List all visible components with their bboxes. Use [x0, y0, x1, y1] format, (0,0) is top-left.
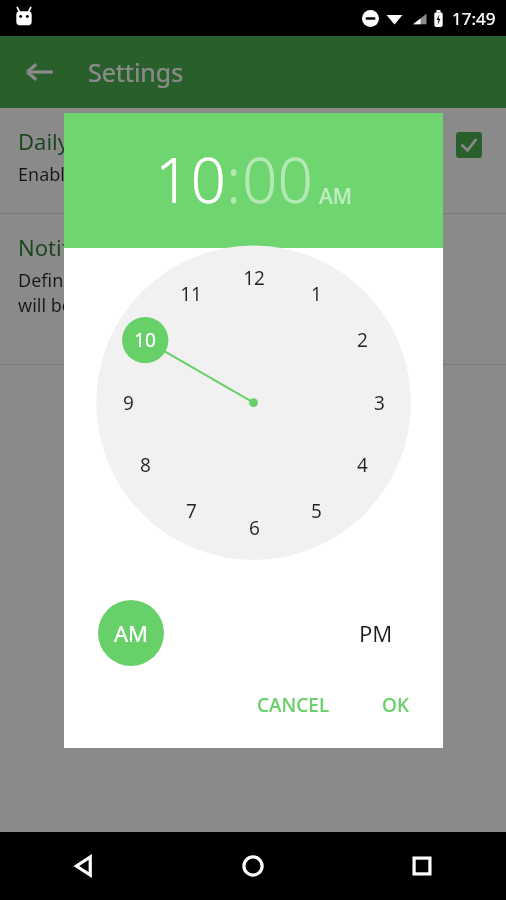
- button[interactable]: 1: [294, 276, 338, 312]
- staticText: AM: [319, 182, 353, 211]
- staticText: 8: [140, 452, 151, 478]
- button[interactable]: Notification time: [0, 214, 506, 364]
- button[interactable]: 10: [155, 137, 226, 221]
- button[interactable]: 9: [106, 385, 150, 421]
- staticText: AM: [114, 618, 149, 648]
- staticText: Daily reminder: [18, 126, 171, 156]
- button[interactable]: 12: [232, 260, 276, 296]
- staticText: 1: [311, 281, 322, 307]
- button[interactable]: CANCEL: [243, 682, 344, 728]
- button[interactable]: 8: [123, 447, 167, 483]
- button[interactable]: OK: [368, 682, 423, 728]
- staticText: 9: [123, 390, 134, 416]
- button[interactable]: PM: [343, 600, 409, 666]
- button[interactable]: AM: [98, 600, 164, 666]
- button[interactable]: 10: [123, 322, 167, 358]
- button[interactable]: Recent apps: [337, 832, 506, 900]
- staticText: Notification time: [18, 232, 191, 262]
- staticText: 11: [180, 281, 202, 307]
- staticText: 17:49: [452, 7, 496, 30]
- staticText: 10: [155, 137, 226, 221]
- button[interactable]: 11: [169, 276, 213, 312]
- staticText: 5: [311, 498, 322, 524]
- staticText: 00: [242, 137, 313, 221]
- staticText: 12: [243, 265, 265, 291]
- staticText: 3: [374, 390, 385, 416]
- button[interactable]: Home: [168, 832, 337, 900]
- staticText: Define the time at which the notificatio…: [18, 268, 358, 318]
- button[interactable]: Daily reminder: [0, 108, 506, 213]
- button[interactable]: 6: [232, 510, 276, 546]
- staticText: OK: [382, 692, 409, 718]
- button[interactable]: 4: [340, 447, 384, 483]
- staticText: :: [226, 137, 242, 221]
- button[interactable]: 00: [242, 137, 313, 221]
- button[interactable]: 2: [340, 322, 384, 358]
- button[interactable]: Back: [24, 56, 56, 88]
- staticText: 2: [357, 327, 368, 353]
- staticText: Settings: [88, 55, 184, 89]
- button[interactable]: Back: [0, 832, 168, 900]
- staticText: Enable a daily notification: [18, 162, 235, 187]
- staticText: PM: [359, 618, 393, 648]
- staticText: 4: [357, 452, 368, 478]
- button[interactable]: 3: [357, 385, 401, 421]
- staticText: 6: [249, 515, 260, 541]
- button[interactable]: 7: [169, 493, 213, 529]
- staticText: 7: [186, 498, 197, 524]
- staticText: CANCEL: [257, 692, 330, 718]
- button[interactable]: 5: [294, 493, 338, 529]
- staticText: 10: [134, 327, 156, 353]
- button[interactable]: Toggle daily reminder: [456, 132, 482, 158]
